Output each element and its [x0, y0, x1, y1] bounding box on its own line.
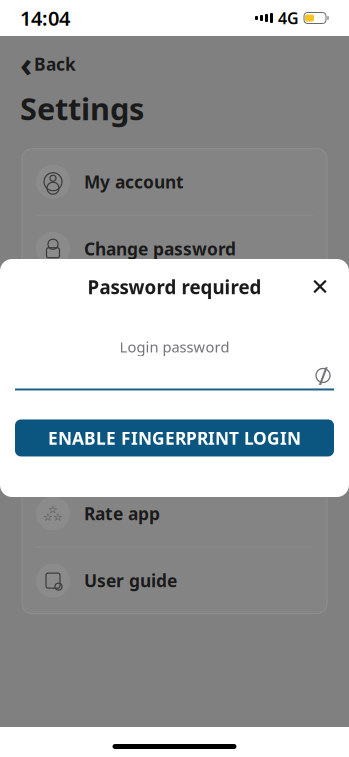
button[interactable]: Login password field — [0, 362, 349, 390]
button[interactable]: Security — [22, 283, 327, 349]
staticText: ☆ — [43, 511, 53, 523]
staticText: Settings — [20, 88, 144, 129]
staticText: Back — [34, 52, 76, 75]
button[interactable]: Close — [301, 268, 339, 306]
staticText: Password required — [87, 275, 261, 299]
staticText: My account — [84, 170, 184, 193]
staticText: Change password — [84, 237, 236, 260]
staticText: ☆ — [53, 511, 63, 523]
staticText: 14:04 — [20, 5, 70, 31]
staticText: ‹ — [20, 42, 32, 86]
staticText: Login password — [119, 337, 229, 356]
staticText: ENABLE FINGERPRINT LOGIN — [48, 426, 301, 449]
staticText: User guide — [84, 569, 177, 592]
staticText: ✕ — [310, 274, 329, 300]
staticText: ☆ — [48, 504, 58, 516]
button[interactable]: ENABLE FINGERPRINT LOGIN — [0, 419, 349, 456]
button[interactable]: ☆ — [22, 481, 327, 547]
staticText: Rate app — [84, 502, 160, 525]
button[interactable]: Change password — [22, 216, 327, 282]
button[interactable]: ‹ — [0, 48, 96, 80]
button[interactable]: My account — [22, 149, 327, 215]
staticText: 4G — [278, 7, 299, 29]
button[interactable]: User guide — [22, 548, 327, 614]
staticText: * For the reason of security, the system… — [36, 376, 305, 454]
staticText: / — [318, 359, 327, 392]
